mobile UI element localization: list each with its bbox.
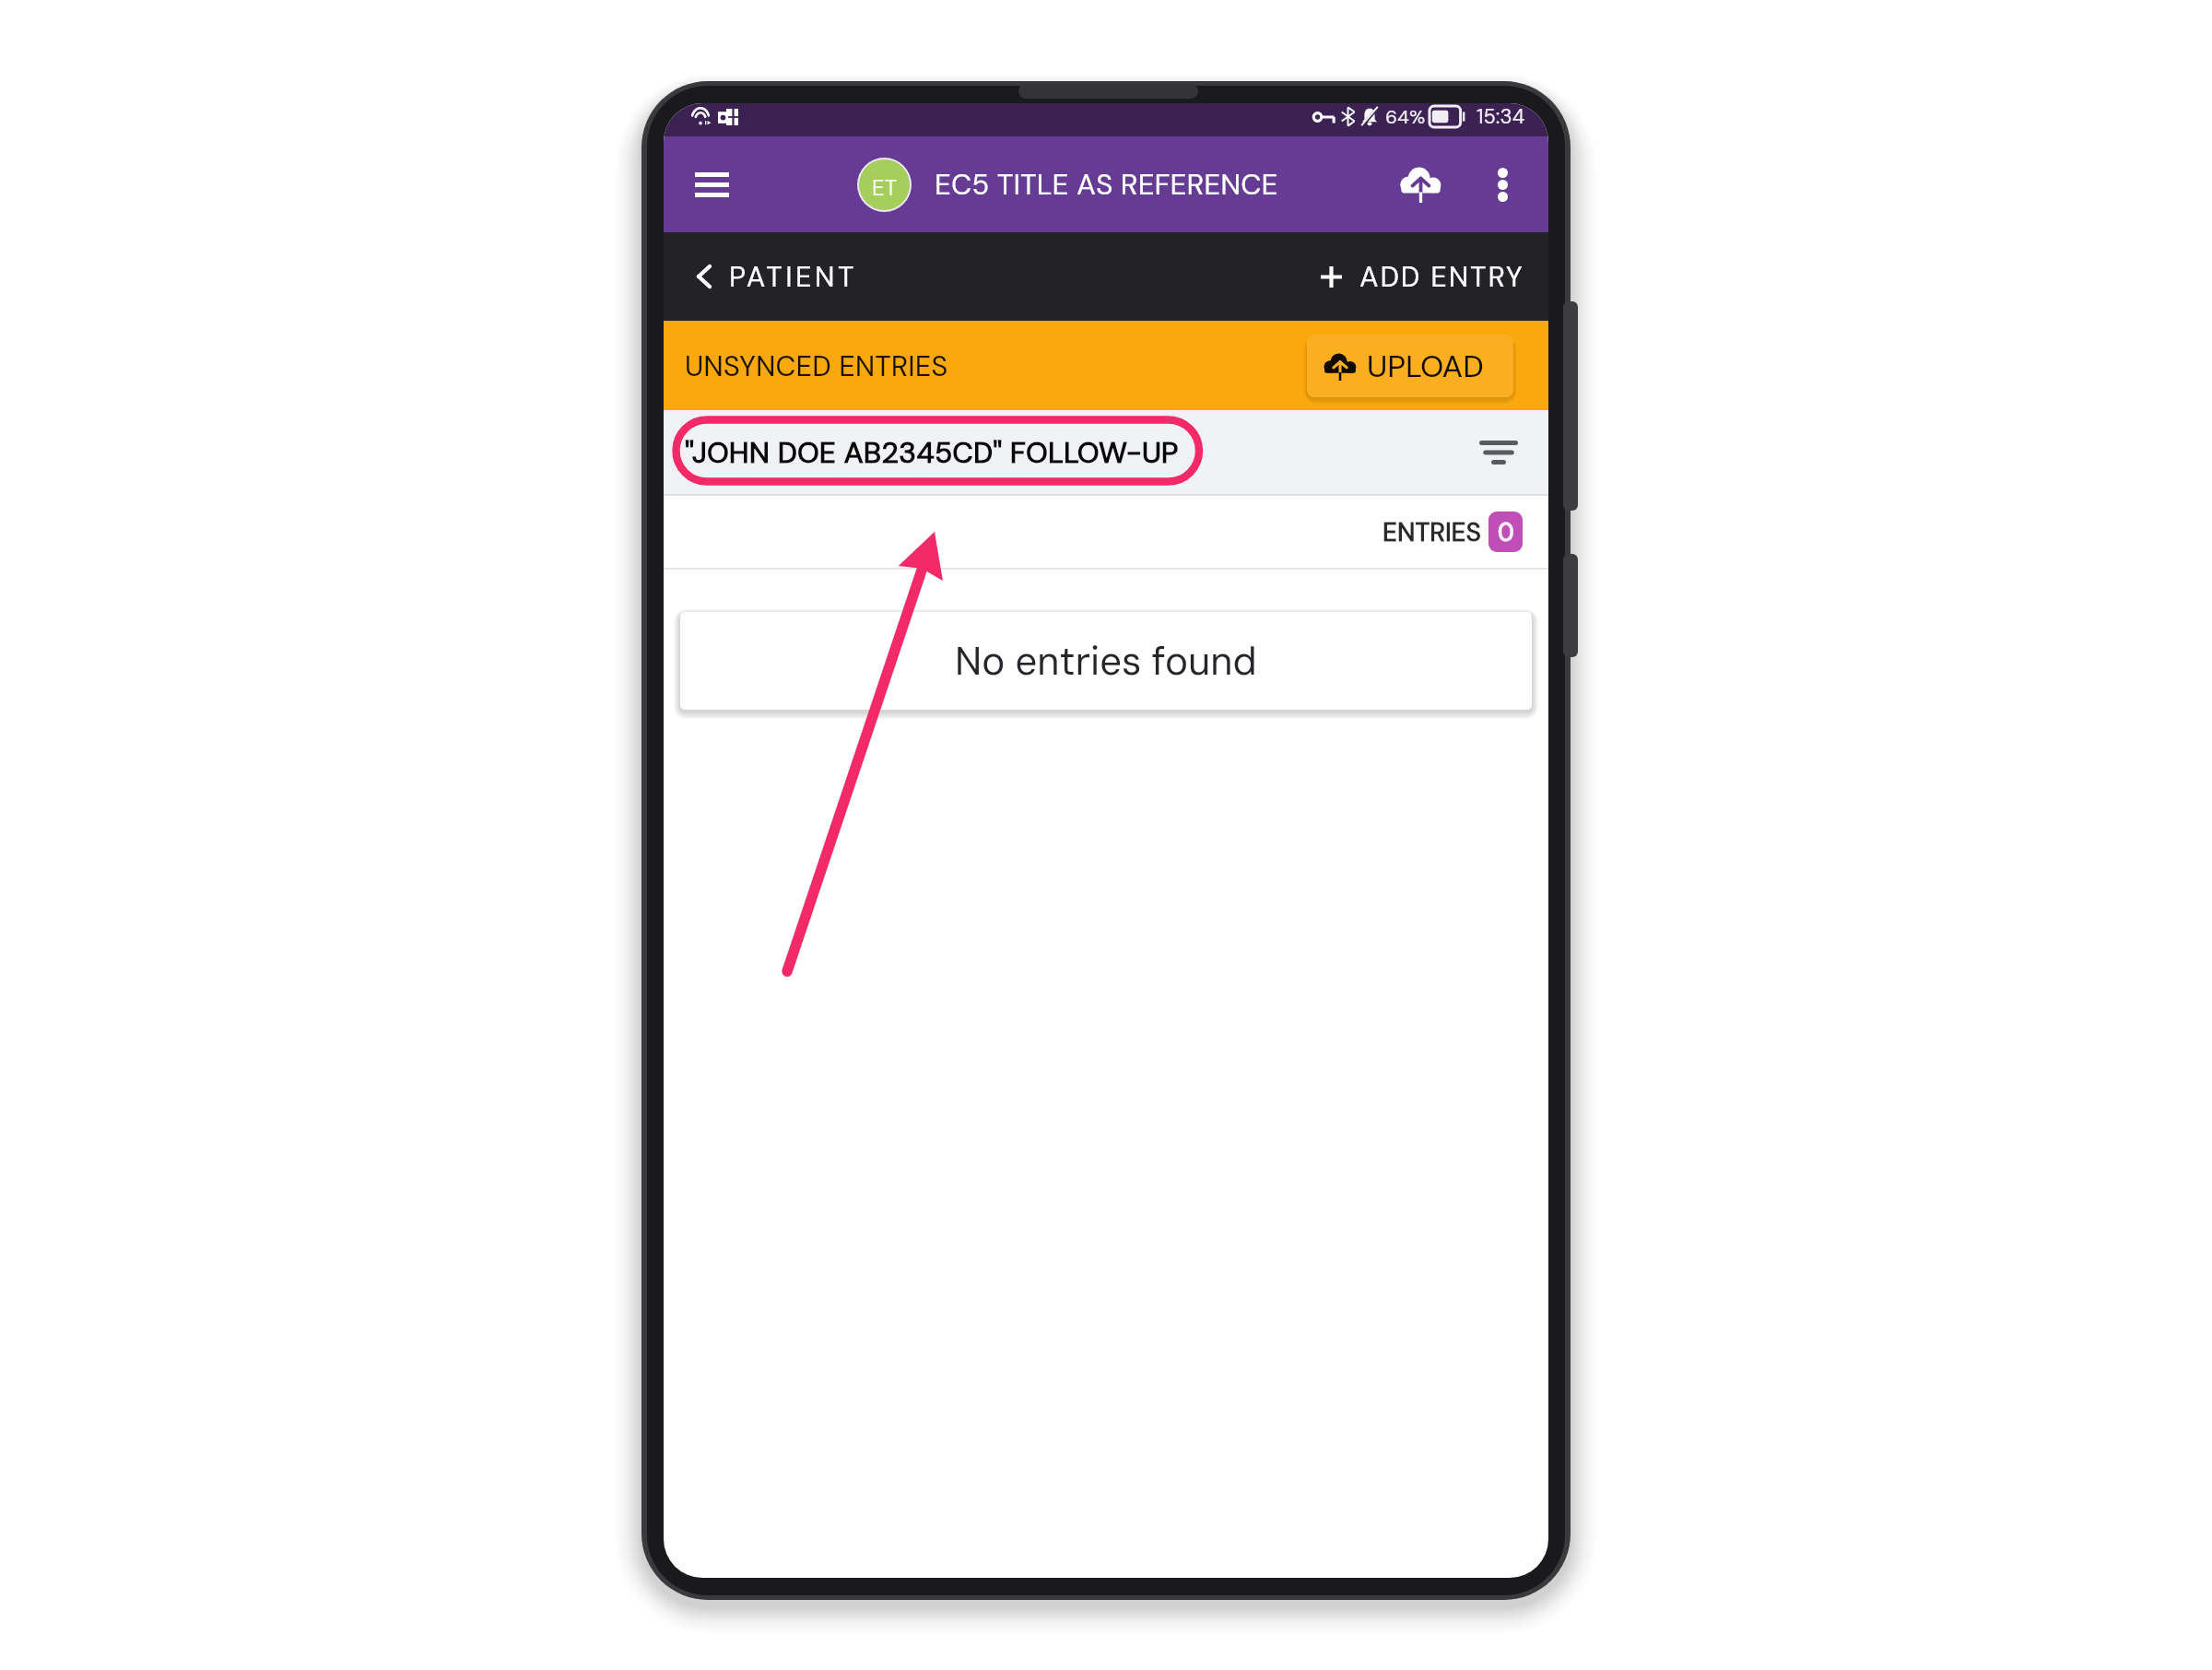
- staticText: UPLOAD: [1367, 346, 1484, 386]
- button[interactable]: Filter entries: [1473, 427, 1524, 478]
- staticText: ADD ENTRY: [1359, 258, 1524, 295]
- staticText: 0: [1498, 516, 1514, 548]
- staticText: 64%: [1385, 104, 1426, 129]
- button[interactable]: More options: [1456, 136, 1548, 232]
- button[interactable]: No entries found: [680, 612, 1532, 710]
- staticText: PATIENT: [729, 258, 857, 295]
- staticText: ENTRIES: [1382, 515, 1481, 548]
- staticText: ET: [872, 173, 898, 202]
- staticText: UNSYNCED ENTRIES: [685, 347, 948, 384]
- button[interactable]: ADD ENTRY: [1302, 241, 1548, 312]
- button[interactable]: Upload all: [1385, 136, 1456, 232]
- staticText: EC5 TITLE AS REFERENCE: [935, 166, 1278, 204]
- button[interactable]: Open navigation menu: [664, 136, 759, 232]
- staticText: 15:34: [1477, 103, 1525, 130]
- button[interactable]: UPLOAD: [1307, 335, 1513, 397]
- staticText: No entries found: [955, 636, 1257, 687]
- staticText: "JOHN DOE AB2345CD" FOLLOW-UP: [685, 433, 1179, 472]
- button[interactable]: PATIENT: [664, 241, 876, 312]
- button[interactable]: "JOHN DOE AB2345CD" FOLLOW-UP: [685, 433, 1179, 472]
